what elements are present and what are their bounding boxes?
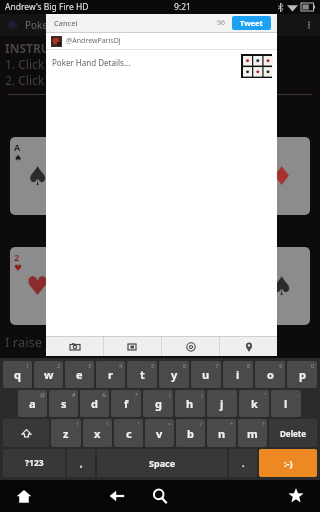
button[interactable]: c — [114, 419, 143, 447]
staticText: i — [236, 367, 240, 382]
button[interactable] — [241, 54, 272, 78]
staticText: , — [80, 457, 83, 469]
button[interactable]: n — [207, 419, 236, 447]
button[interactable]: m — [238, 419, 267, 447]
staticText: @AndrewParisDJ — [66, 36, 121, 46]
button[interactable]: f — [111, 390, 141, 417]
button[interactable]: Location — [220, 337, 277, 356]
staticText: ? — [262, 420, 265, 427]
staticText: u — [202, 367, 210, 382]
button[interactable]: i — [223, 361, 253, 388]
button[interactable]: x — [83, 419, 112, 447]
button[interactable]: j — [207, 390, 237, 417]
button[interactable]: Comma — [67, 449, 95, 477]
staticText: 7 — [215, 362, 219, 369]
staticText: w — [44, 367, 54, 382]
staticText: Poker Hand Details... — [52, 57, 131, 68]
staticText: Cancel — [54, 18, 78, 28]
button[interactable]: b — [176, 419, 205, 447]
staticText: v — [156, 426, 163, 441]
staticText: k — [251, 396, 258, 411]
button[interactable]: 2 — [10, 247, 66, 325]
button[interactable]: Period — [229, 449, 257, 477]
staticText: a — [29, 396, 36, 411]
button[interactable]: o — [255, 361, 285, 388]
staticText: x — [94, 426, 101, 441]
staticText: 2 — [14, 251, 20, 263]
staticText: 0 — [311, 362, 315, 369]
staticText: ) — [201, 391, 203, 398]
staticText: y — [171, 367, 178, 382]
button[interactable]: K — [254, 137, 310, 215]
button[interactable]: h — [175, 390, 205, 417]
button[interactable]: w — [34, 361, 63, 388]
staticText: 3 — [88, 362, 92, 369]
staticText: f — [124, 396, 129, 411]
staticText: " — [138, 420, 141, 427]
staticText: Andrew's Big Fire HD — [5, 1, 89, 13]
staticText: d — [91, 396, 98, 411]
staticText: 8 — [247, 362, 251, 369]
button[interactable]: Favorites — [272, 480, 320, 512]
button[interactable]: k — [239, 390, 269, 417]
button[interactable]: Cancel — [52, 16, 80, 30]
staticText: j — [220, 396, 224, 411]
staticText: o — [267, 367, 274, 382]
staticText: g — [155, 396, 162, 411]
staticText: 1 — [26, 362, 30, 369]
staticText: ♥ — [26, 271, 50, 301]
button[interactable]: e — [65, 361, 94, 388]
button[interactable]: a — [18, 390, 47, 417]
button[interactable]: Camera — [46, 337, 103, 356]
staticText: Poker — [25, 18, 53, 32]
button[interactable]: Back — [100, 480, 133, 512]
staticText: b — [187, 426, 194, 441]
staticText: t — [140, 367, 145, 382]
staticText: z — [63, 426, 69, 441]
button[interactable]: t — [127, 361, 157, 388]
button[interactable]: Delete — [269, 419, 317, 447]
staticText: 2. Click again to flip — [5, 72, 115, 88]
button[interactable]: Mention — [162, 337, 219, 356]
staticText: m — [247, 426, 258, 441]
staticText: q — [14, 367, 21, 382]
button[interactable]: p — [287, 361, 317, 388]
button[interactable]: g — [143, 390, 173, 417]
staticText: s — [61, 396, 67, 411]
button[interactable]: :-) — [259, 449, 317, 477]
staticText: @ — [40, 391, 45, 398]
button[interactable]: Space — [97, 449, 227, 477]
staticText: ♠ — [270, 271, 294, 301]
staticText: 4 — [119, 362, 123, 369]
staticText: 9:21 — [174, 1, 191, 13]
button[interactable]: q — [3, 361, 32, 388]
staticText: - — [297, 391, 299, 398]
button[interactable]: A — [10, 137, 66, 215]
button[interactable]: r — [96, 361, 125, 388]
button[interactable]: u — [191, 361, 221, 388]
staticText: 1 — [106, 420, 110, 427]
button[interactable]: Shift — [3, 419, 49, 447]
staticText: ( — [169, 391, 171, 398]
button[interactable]: ?123 — [3, 449, 65, 477]
staticText: + — [230, 420, 234, 427]
button[interactable]: y — [159, 361, 189, 388]
button[interactable]: Gallery — [104, 337, 161, 356]
button[interactable]: z — [51, 419, 81, 447]
staticText: n — [218, 426, 226, 441]
button[interactable]: v — [145, 419, 174, 447]
button[interactable]: s — [49, 390, 78, 417]
button[interactable]: Home — [0, 480, 48, 512]
button[interactable]: d — [80, 390, 109, 417]
button[interactable]: l — [271, 390, 301, 417]
button[interactable]: Search — [143, 480, 176, 512]
staticText: 5 — [151, 362, 155, 369]
staticText: * — [135, 391, 139, 398]
staticText: & — [102, 391, 107, 398]
button[interactable]: 5 — [254, 247, 310, 325]
staticText: # — [72, 391, 76, 398]
button[interactable]: Tweet — [232, 16, 271, 30]
